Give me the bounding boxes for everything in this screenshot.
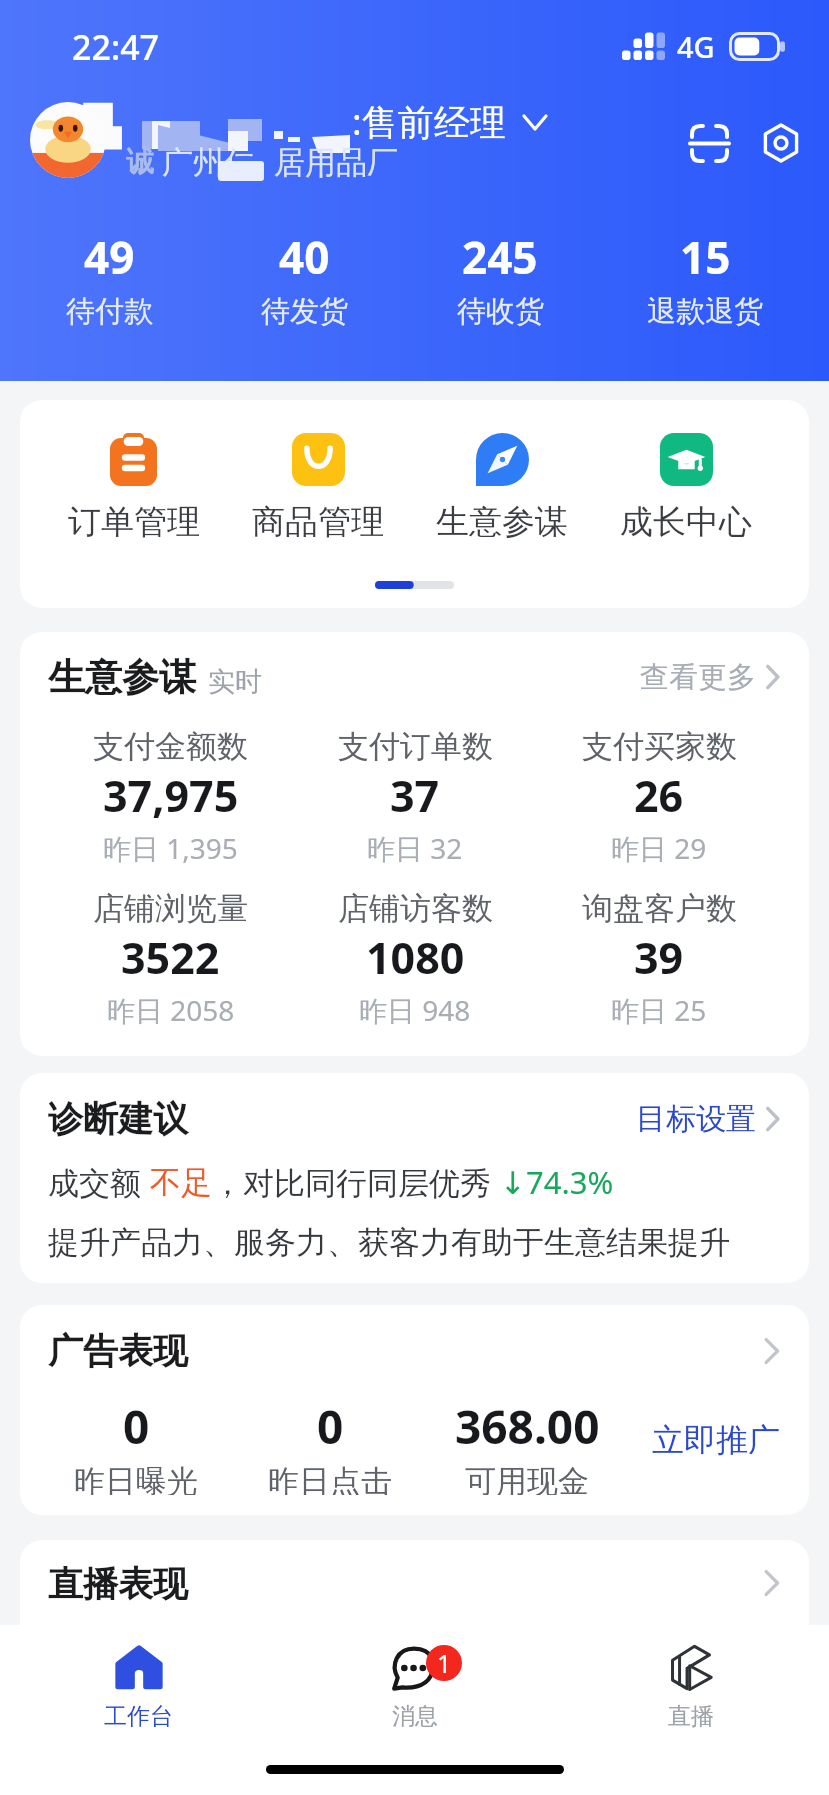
staticText: 昨日 25 xyxy=(611,991,707,1029)
staticText: 22:47 xyxy=(72,24,160,70)
staticText: ↓74.3% xyxy=(500,1161,614,1203)
staticText: 昨日 1,395 xyxy=(103,829,238,867)
staticText: 直播 xyxy=(668,1702,714,1731)
staticText: 提升产品力、服务力、获客力有助于生意结果提升 xyxy=(48,1223,730,1262)
staticText: 1080 xyxy=(366,928,465,987)
staticText: 店铺访客数 xyxy=(338,889,493,928)
button[interactable]: 直播 xyxy=(553,1625,829,1750)
staticText: 39 xyxy=(634,928,684,987)
staticText: 1 xyxy=(437,1646,452,1680)
staticText: 不足 xyxy=(150,1163,212,1202)
staticText: 直播表现 xyxy=(48,1562,188,1606)
staticText: 立即推广 xyxy=(652,1420,780,1460)
staticText: 商品管理 xyxy=(252,501,384,543)
staticText: 询盘客户数 xyxy=(582,889,737,928)
staticText: :售前经理 xyxy=(352,97,506,146)
staticText: 昨日 2058 xyxy=(107,991,235,1029)
staticText: 广州仁 xyxy=(162,143,255,182)
button[interactable]: 工作台 xyxy=(0,1625,277,1750)
staticText: 26 xyxy=(634,766,684,825)
staticText: 15 xyxy=(680,227,731,287)
staticText: 订单管理 xyxy=(68,501,200,543)
staticText: 查看更多 xyxy=(640,659,756,696)
button[interactable]: 支付订单数 xyxy=(293,727,537,867)
staticText: 昨日 32 xyxy=(367,829,463,867)
staticText: 消息 xyxy=(392,1702,438,1731)
staticText: 昨日点击 xyxy=(268,1462,392,1495)
staticText: 37,975 xyxy=(103,766,239,825)
button[interactable]: Scan code xyxy=(673,107,745,179)
button[interactable]: 1 xyxy=(277,1625,553,1750)
button[interactable]: 40 xyxy=(207,227,401,330)
button[interactable]: Profile xyxy=(30,99,130,181)
staticText: 368.00 xyxy=(455,1395,600,1458)
staticText: 成长中心 xyxy=(620,501,752,543)
staticText: 店铺浏览量 xyxy=(93,889,248,928)
button[interactable]: 49 xyxy=(12,227,207,330)
button[interactable]: 支付金额数 xyxy=(48,727,293,867)
staticText: 昨日 948 xyxy=(359,991,471,1029)
staticText: 昨日 29 xyxy=(611,829,707,867)
staticText: 245 xyxy=(462,227,538,287)
staticText: 40 xyxy=(279,227,330,287)
staticText: 0 xyxy=(123,1395,150,1458)
staticText: 4G xyxy=(677,27,715,66)
staticText: 居用品厂 xyxy=(274,143,398,182)
button[interactable]: 店铺浏览量 xyxy=(48,889,293,1029)
button[interactable]: 商品管理 xyxy=(226,433,410,543)
button[interactable]: 立即推广 xyxy=(636,1409,796,1471)
button[interactable]: 支付买家数 xyxy=(537,727,781,867)
staticText: 广告表现 xyxy=(48,1329,188,1373)
button[interactable]: 生意参谋 xyxy=(410,433,594,543)
button[interactable]: 成长中心 xyxy=(594,433,778,543)
staticText: ，对比同行同层优秀 xyxy=(212,1161,500,1203)
staticText: 诚 xyxy=(126,144,154,179)
button[interactable]: 目标设置 xyxy=(636,1095,781,1143)
button[interactable]: 直播表现 xyxy=(48,1540,781,1660)
button[interactable]: 15 xyxy=(599,227,811,330)
button[interactable]: 245 xyxy=(401,227,599,330)
staticText: 支付订单数 xyxy=(338,727,493,766)
staticText: 可用现金 xyxy=(465,1462,589,1495)
staticText: 目标设置 xyxy=(636,1100,756,1138)
staticText: 实时 xyxy=(208,665,262,699)
button[interactable]: 询盘客户数 xyxy=(537,889,781,1029)
staticText: 昨日曝光 xyxy=(74,1462,198,1495)
button[interactable]: 订单管理 xyxy=(41,433,226,543)
staticText: 生意参谋 xyxy=(48,654,196,701)
staticText: 49 xyxy=(84,227,135,287)
staticText: 37 xyxy=(390,766,440,825)
staticText: 支付金额数 xyxy=(93,727,248,766)
staticText: 诊断建议 xyxy=(48,1097,188,1141)
button[interactable]: 店铺访客数 xyxy=(293,889,537,1029)
button[interactable]: 生意参谋 xyxy=(48,652,781,702)
staticText: 0 xyxy=(317,1395,344,1458)
staticText: 生意参谋 xyxy=(436,501,568,543)
staticText: 工作台 xyxy=(104,1702,173,1731)
staticText: 待发货 xyxy=(261,293,348,330)
button[interactable]: Settings xyxy=(745,107,817,179)
staticText: 退款退货 xyxy=(647,293,763,330)
button[interactable]: 广告表现 xyxy=(48,1327,781,1375)
staticText: 待付款 xyxy=(66,293,153,330)
staticText: 支付买家数 xyxy=(582,727,737,766)
staticText: 成交额 xyxy=(48,1161,150,1203)
staticText: 待收货 xyxy=(457,293,544,330)
staticText: 3522 xyxy=(121,928,220,987)
